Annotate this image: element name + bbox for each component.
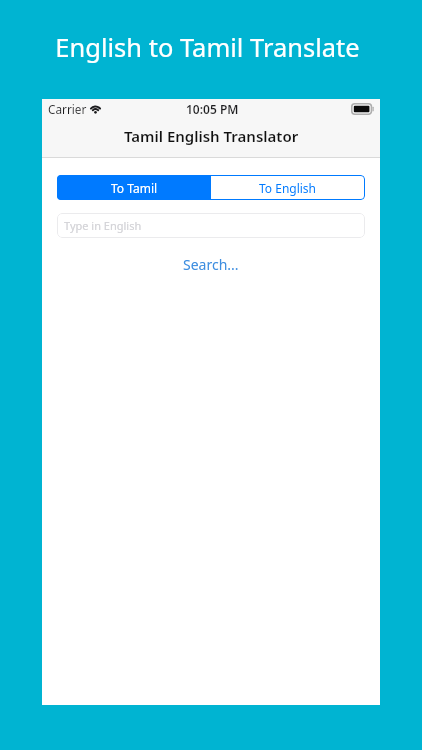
button[interactable]: To Tamil (57, 175, 211, 200)
staticText: 10:05 PM (186, 101, 239, 117)
button[interactable]: To English (211, 175, 365, 200)
staticText: To Tamil (111, 180, 158, 196)
other: Battery (351, 103, 375, 115)
button[interactable]: Type in English (57, 213, 365, 238)
staticText: Tamil English Translator (124, 126, 299, 146)
staticText: Search... (183, 255, 239, 273)
staticText: Carrier (48, 101, 87, 117)
other: Wi-Fi (89, 103, 102, 114)
staticText: English to Tamil Translate (55, 30, 360, 65)
button[interactable]: Search... (177, 253, 245, 275)
staticText: Type in English (64, 218, 142, 233)
staticText: To English (259, 180, 317, 196)
